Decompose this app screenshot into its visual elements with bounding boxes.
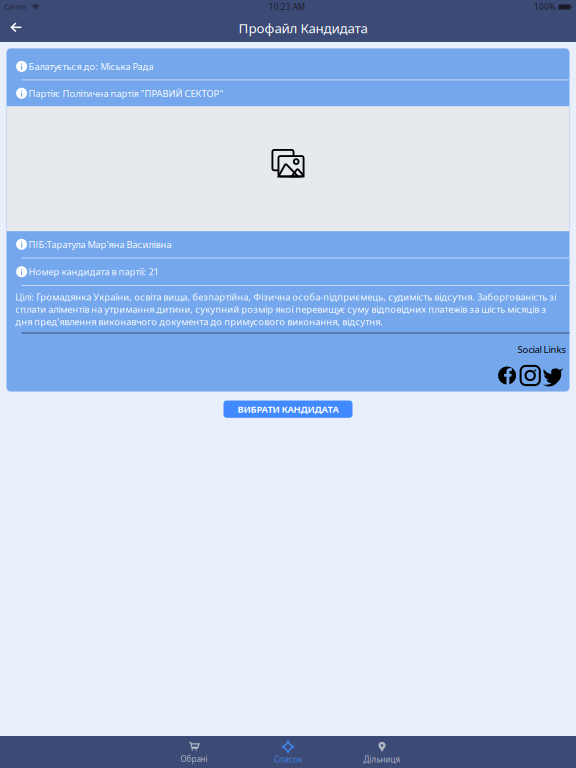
staticText: 100% — [534, 2, 556, 12]
button[interactable]: Back — [0, 14, 31, 42]
staticText: Номер кандидата в партії: 21 — [29, 265, 159, 278]
button[interactable]: Список — [241, 736, 335, 768]
staticText: ПІБ:Таратула Мар'яна Василівна — [29, 238, 172, 250]
button[interactable]: Instagram — [516, 366, 540, 385]
staticText: 10:23 AM — [269, 2, 305, 12]
staticText: Обрані — [180, 753, 207, 764]
staticText: Список — [274, 754, 302, 765]
button[interactable]: Twitter — [540, 365, 563, 386]
button[interactable]: Дільниця — [335, 736, 429, 768]
button[interactable]: ВИБРАТИ КАНДИДАТА — [223, 400, 352, 418]
staticText: Цілі: Громадянка України, освіта вища, б… — [15, 291, 556, 328]
staticText: Балатується до: Міська Рада — [29, 60, 154, 73]
staticText: Carrier — [4, 3, 27, 11]
button[interactable]: Обрані — [147, 736, 241, 768]
staticText: Social Links — [517, 343, 565, 356]
button[interactable]: Facebook — [498, 366, 516, 384]
staticText: ВИБРАТИ КАНДИДАТА — [237, 403, 338, 415]
staticText: Дільниця — [363, 754, 400, 765]
staticText: Партія: Політична партія "ПРАВИЙ СЕКТОР" — [29, 87, 224, 99]
staticText: Профайл Кандидата — [238, 19, 367, 37]
